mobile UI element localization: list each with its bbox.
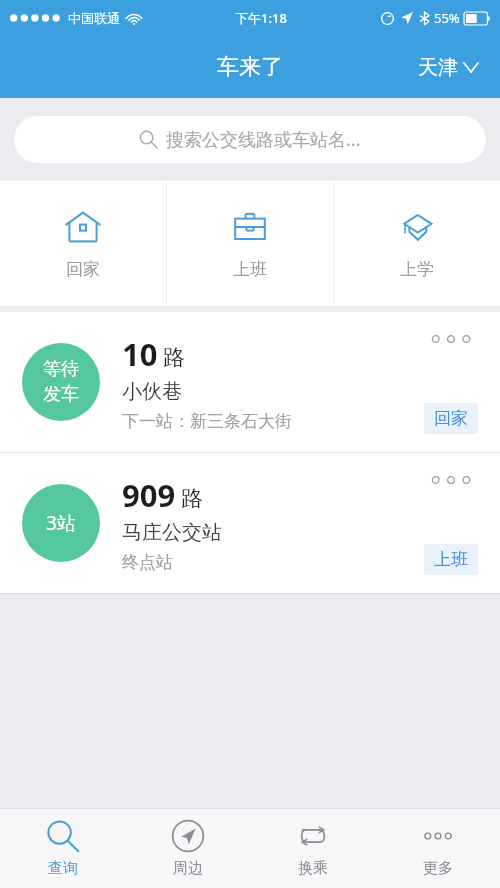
staticText: 查询 (48, 859, 78, 878)
staticText: 55% (434, 9, 460, 27)
staticText: 周边 (173, 859, 203, 878)
staticText: 中国联通 (68, 10, 120, 26)
button[interactable]: 上班 (167, 181, 333, 306)
button[interactable]: More options (424, 330, 478, 348)
button[interactable]: 回家 (0, 181, 166, 306)
button[interactable]: 更多 (375, 809, 500, 888)
staticText: 3站 (46, 510, 76, 536)
staticText: 更多 (423, 859, 453, 878)
button[interactable]: 上学 (334, 181, 500, 306)
staticText: 909 (122, 474, 176, 516)
staticText: 小伙巷 (122, 379, 182, 404)
staticText: 上班 (233, 259, 267, 280)
staticText: 上班 (434, 549, 468, 570)
staticText: 搜索公交线路或车站名... (166, 127, 361, 152)
staticText: 下午1:18 (235, 9, 287, 27)
staticText: 发车 (43, 383, 79, 406)
button[interactable]: 搜索公交线路或车站名... (14, 116, 486, 163)
staticText: 路 (181, 485, 203, 513)
staticText: 天津 (418, 55, 458, 80)
button[interactable]: More options (424, 471, 478, 489)
staticText: 10 (122, 333, 158, 375)
button[interactable]: 周边 (125, 809, 250, 888)
button[interactable]: 换乘 (250, 809, 375, 888)
staticText: 路 (163, 344, 185, 372)
button[interactable]: 天津 (412, 49, 484, 86)
button[interactable]: 查询 (0, 809, 125, 888)
staticText: 换乘 (298, 859, 328, 878)
staticText: 等待 (43, 358, 79, 381)
staticText: 回家 (434, 408, 468, 429)
staticText: 上学 (400, 259, 434, 280)
staticText: 车来了 (217, 53, 283, 81)
staticText: 马庄公交站 (122, 520, 222, 545)
staticText: 回家 (66, 259, 100, 280)
staticText: 终点站 (122, 552, 173, 573)
button[interactable]: 等待 (0, 312, 500, 452)
button[interactable]: 回家 (424, 403, 478, 434)
staticText: 下一站：新三条石大街 (122, 411, 292, 432)
button[interactable]: 上班 (424, 544, 478, 575)
button[interactable]: 3站 (0, 453, 500, 593)
